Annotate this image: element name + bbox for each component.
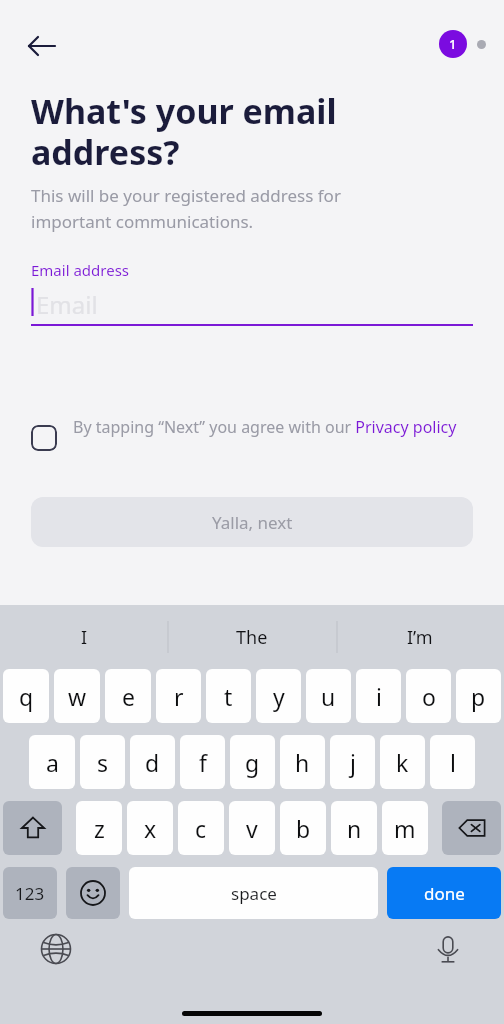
button[interactable]: k xyxy=(380,735,425,789)
staticText: l xyxy=(450,747,456,778)
button[interactable]: 123 xyxy=(3,867,57,919)
button[interactable]: y xyxy=(256,669,301,723)
button[interactable]: r xyxy=(156,669,201,723)
staticText: I xyxy=(81,625,88,650)
staticText: I’m xyxy=(407,625,433,650)
staticText: a xyxy=(46,747,59,778)
button[interactable]: w xyxy=(54,669,100,723)
staticText: c xyxy=(195,813,207,844)
button[interactable]: Yalla, next xyxy=(31,497,473,547)
staticText: w xyxy=(68,681,87,712)
staticText: m xyxy=(394,813,416,844)
button[interactable]: d xyxy=(130,735,175,789)
button[interactable]: The xyxy=(168,605,336,669)
staticText: 1 xyxy=(449,35,457,53)
staticText: x xyxy=(144,813,157,844)
button[interactable]: Email xyxy=(31,284,473,324)
staticText: o xyxy=(422,681,436,712)
staticText: v xyxy=(246,813,258,844)
staticText: This will be your registered address for… xyxy=(31,184,341,233)
button[interactable]: c xyxy=(178,801,224,855)
button[interactable]: j xyxy=(330,735,375,789)
button[interactable]: p xyxy=(456,669,501,723)
staticText: u xyxy=(321,681,336,712)
staticText: done xyxy=(424,882,465,905)
staticText: s xyxy=(97,747,109,778)
button[interactable]: v xyxy=(229,801,275,855)
staticText: i xyxy=(376,681,382,712)
button[interactable]: Voice input xyxy=(428,929,468,969)
staticText: What's your email address? xyxy=(31,88,337,175)
button[interactable]: e xyxy=(105,669,151,723)
button[interactable]: Backspace xyxy=(442,801,501,855)
staticText: e xyxy=(122,681,135,712)
button[interactable]: a xyxy=(29,735,75,789)
staticText: y xyxy=(273,681,285,712)
staticText: Email address xyxy=(31,260,130,280)
button[interactable]: x xyxy=(127,801,173,855)
button[interactable]: o xyxy=(406,669,451,723)
button[interactable]: q xyxy=(3,669,49,723)
staticText: k xyxy=(396,747,409,778)
button[interactable]: l xyxy=(430,735,475,789)
button[interactable]: i xyxy=(356,669,401,723)
button[interactable]: t xyxy=(206,669,251,723)
staticText: j xyxy=(350,747,356,778)
staticText: Yalla, next xyxy=(212,511,293,534)
button[interactable]: z xyxy=(76,801,122,855)
button[interactable]: n xyxy=(331,801,377,855)
button[interactable]: Emoji xyxy=(66,867,120,919)
button[interactable]: b xyxy=(280,801,326,855)
staticText: g xyxy=(245,747,260,778)
staticText: z xyxy=(94,813,105,844)
staticText: f xyxy=(199,747,207,778)
button[interactable]: g xyxy=(230,735,275,789)
staticText: h xyxy=(295,747,310,778)
button[interactable]: f xyxy=(180,735,225,789)
button[interactable]: h xyxy=(280,735,325,789)
staticText: n xyxy=(347,813,362,844)
staticText: The xyxy=(236,625,268,650)
staticText: space xyxy=(231,882,277,905)
staticText: p xyxy=(471,681,486,712)
staticText: Email xyxy=(36,288,98,321)
button[interactable]: I’m xyxy=(336,605,504,669)
staticText: 123 xyxy=(15,882,45,905)
button[interactable]: I xyxy=(0,605,168,669)
button[interactable]: Change keyboard language xyxy=(36,929,76,969)
staticText: t xyxy=(224,681,233,712)
staticText: b xyxy=(296,813,311,844)
staticText: By tapping “Next” you agree with our Pri… xyxy=(73,416,457,438)
button[interactable]: Back xyxy=(22,22,70,70)
staticText: r xyxy=(174,681,184,712)
staticText: q xyxy=(19,681,34,712)
button[interactable]: space xyxy=(129,867,378,919)
button[interactable]: done xyxy=(387,867,501,919)
button[interactable]: s xyxy=(80,735,125,789)
button[interactable]: m xyxy=(382,801,428,855)
button[interactable]: u xyxy=(306,669,351,723)
button[interactable]: Shift xyxy=(3,801,62,855)
staticText: d xyxy=(145,747,160,778)
button[interactable]: By tapping “Next” you agree with our Pri… xyxy=(31,416,473,451)
